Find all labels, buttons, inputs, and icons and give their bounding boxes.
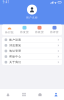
button[interactable]: 地址管理 bbox=[2, 48, 62, 54]
button[interactable]: 账户设置 bbox=[2, 37, 62, 43]
staticText: 待收货 bbox=[35, 30, 44, 34]
staticText: 待付款 bbox=[5, 31, 14, 34]
staticText: 9:41 bbox=[2, 0, 9, 4]
staticText: 待评价 bbox=[50, 30, 59, 34]
button[interactable]: 分类 bbox=[16, 89, 32, 100]
staticText: 待发货 bbox=[20, 30, 29, 34]
button[interactable]: 购物车 bbox=[32, 89, 48, 100]
button[interactable]: 待发货 bbox=[17, 26, 32, 34]
button[interactable]: 关于我们 bbox=[2, 59, 62, 65]
button[interactable]: 待付款 bbox=[2, 26, 17, 34]
button[interactable]: 待评价 bbox=[47, 26, 62, 34]
staticText: 帮助中心 bbox=[9, 55, 21, 58]
button[interactable]: 帮助中心 bbox=[2, 54, 62, 59]
button[interactable]: 我的 bbox=[48, 89, 64, 100]
button[interactable]: 消息通知 bbox=[2, 43, 62, 48]
staticText: 用户名称 bbox=[26, 16, 38, 19]
staticText: 账户设置 bbox=[9, 38, 21, 41]
staticText: 地址管理 bbox=[9, 49, 21, 53]
staticText: 消息通知 bbox=[9, 44, 21, 47]
button[interactable]: 首页 bbox=[0, 89, 16, 100]
button[interactable]: 待收货 bbox=[32, 26, 47, 34]
staticText: 关于我们 bbox=[9, 60, 21, 64]
